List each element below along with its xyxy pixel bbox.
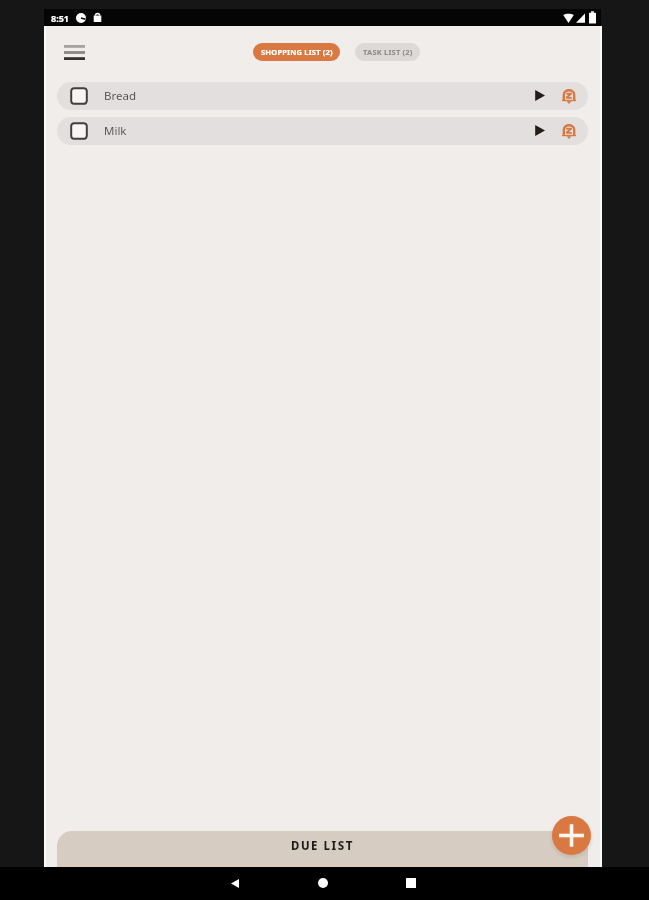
button[interactable]: Expand bbox=[529, 120, 551, 142]
button[interactable]: TASK LIST (2) bbox=[355, 43, 420, 61]
button[interactable]: DUE LIST bbox=[57, 831, 588, 867]
button[interactable]: Home bbox=[308, 868, 338, 898]
button[interactable]: Reminder bbox=[558, 120, 580, 142]
button[interactable]: Bread bbox=[57, 82, 588, 110]
button[interactable]: Menu bbox=[57, 35, 91, 69]
button[interactable]: Back bbox=[220, 868, 250, 898]
staticText: Milk bbox=[104, 123, 127, 139]
button[interactable]: Milk bbox=[57, 117, 588, 145]
button[interactable]: Reminder bbox=[558, 85, 580, 107]
button[interactable]: Expand bbox=[529, 85, 551, 107]
staticText: TASK LIST (2) bbox=[363, 47, 413, 57]
button[interactable]: Recents bbox=[396, 868, 426, 898]
staticText: DUE LIST bbox=[291, 838, 354, 854]
button[interactable]: SHOPPING LIST (2) bbox=[253, 43, 340, 61]
button[interactable]: Add item bbox=[552, 816, 591, 855]
staticText: Bread bbox=[104, 88, 137, 104]
staticText: SHOPPING LIST (2) bbox=[261, 47, 333, 57]
staticText: 8:51 bbox=[51, 12, 69, 24]
